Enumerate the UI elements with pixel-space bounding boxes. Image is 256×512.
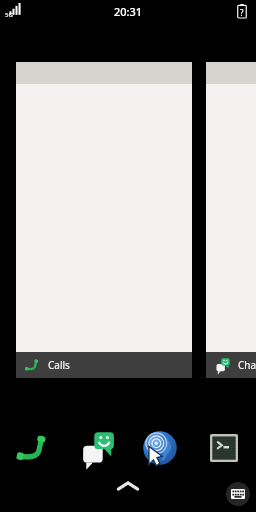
staticText: 20:31 [114, 4, 143, 19]
staticText: ? [240, 7, 244, 18]
button[interactable]: Browser [138, 426, 182, 470]
button[interactable]: Chat [206, 62, 256, 378]
staticText: Chat [238, 358, 256, 372]
other: Battery unknown [234, 3, 250, 19]
button[interactable]: Open app drawer [111, 476, 145, 496]
button[interactable]: Calls [16, 62, 192, 378]
button[interactable]: Terminal [202, 426, 246, 470]
button[interactable]: Show keyboard [226, 482, 250, 506]
staticText: Calls [48, 358, 70, 372]
button[interactable]: Messages [74, 426, 118, 470]
staticText: 5G [5, 11, 13, 19]
button[interactable]: Phone [10, 426, 54, 470]
